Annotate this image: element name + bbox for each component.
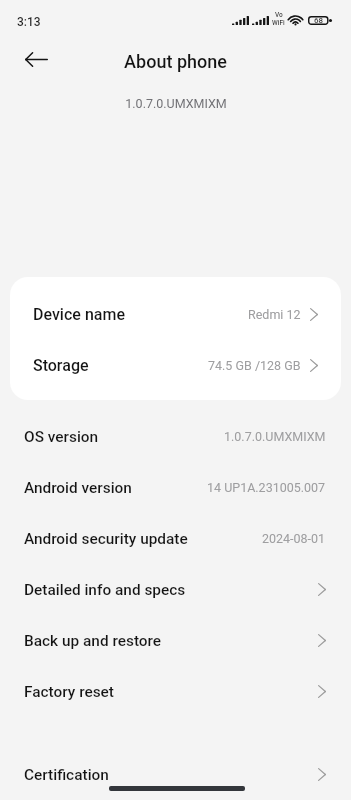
staticText: 3:13 bbox=[17, 15, 41, 29]
staticText: 2024-08-01 bbox=[262, 531, 326, 546]
button[interactable]: Device name bbox=[10, 289, 341, 340]
staticText: 14 UP1A.231005.007 bbox=[207, 480, 326, 495]
staticText: Factory reset bbox=[24, 683, 114, 701]
staticText: Device name bbox=[33, 305, 125, 324]
staticText: About phone bbox=[124, 51, 227, 72]
button[interactable]: Factory reset bbox=[0, 666, 351, 717]
button[interactable]: OS version bbox=[0, 411, 351, 462]
staticText: 1.0.7.0.UMXMIXM bbox=[224, 429, 326, 444]
button[interactable]: Android security update bbox=[0, 513, 351, 564]
staticText: Back up and restore bbox=[24, 632, 162, 650]
staticText: 74.5 GB /128 GB bbox=[208, 358, 301, 373]
staticText: Redmi 12 bbox=[248, 307, 301, 322]
button[interactable]: Android version bbox=[0, 462, 351, 513]
staticText: WiFi bbox=[272, 19, 285, 27]
button[interactable]: Detailed info and specs bbox=[0, 564, 351, 615]
button[interactable]: Certification bbox=[0, 749, 351, 800]
staticText: Android version bbox=[24, 479, 132, 497]
staticText: Storage bbox=[33, 356, 89, 375]
button[interactable]: Storage bbox=[10, 340, 341, 391]
staticText: Certification bbox=[24, 766, 109, 784]
button[interactable]: Back bbox=[22, 45, 51, 74]
staticText: 1.0.7.0.UMXMIXM bbox=[125, 96, 227, 111]
staticText: 68 bbox=[314, 16, 324, 25]
staticText: Android security update bbox=[24, 530, 188, 548]
staticText: Detailed info and specs bbox=[24, 581, 186, 599]
staticText: Vo bbox=[275, 11, 283, 19]
button[interactable]: Back up and restore bbox=[0, 615, 351, 666]
staticText: OS version bbox=[24, 428, 99, 446]
